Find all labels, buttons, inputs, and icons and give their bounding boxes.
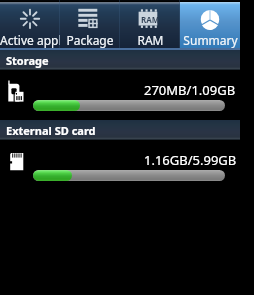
button[interactable]: 270MB/1.09GB — [0, 70, 240, 120]
button[interactable]: External SD card — [0, 120, 240, 140]
button[interactable]: Summary — [180, 0, 240, 48]
button[interactable]: Storage — [0, 50, 240, 70]
staticText: Summary — [183, 32, 238, 48]
button[interactable]: 1.16GB/5.99GB — [0, 140, 240, 190]
staticText: Storage — [6, 53, 49, 68]
button[interactable]: RAM — [120, 0, 180, 48]
staticText: Active applications — [0, 32, 60, 48]
staticText: 1.16GB/5.99GB — [144, 151, 237, 169]
staticText: RAM — [141, 14, 160, 25]
staticText: 270MB/1.09GB — [144, 81, 236, 99]
button[interactable]: Package — [60, 0, 120, 48]
staticText: Package — [66, 32, 114, 48]
button[interactable]: Active applications — [0, 0, 60, 48]
staticText: RAM — [137, 32, 164, 48]
staticText: External SD card — [6, 123, 96, 138]
